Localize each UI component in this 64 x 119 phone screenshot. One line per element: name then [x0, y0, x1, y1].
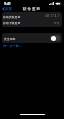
staticText: 打开 — [54, 21, 60, 24]
staticText: 自动下载更新 — [3, 21, 21, 24]
staticText: 9:41 — [4, 1, 11, 6]
button[interactable]: 自动下载更新 — [3, 19, 60, 25]
staticText: 安全回应 — [4, 37, 16, 40]
button[interactable]: 安全回应 — [2, 33, 62, 43]
button[interactable]: 自动安装更新 — [3, 13, 60, 19]
button[interactable]: Toggle — [50, 35, 60, 41]
staticText: 软件更新 — [23, 7, 41, 12]
staticText: 进一步了解… — [3, 44, 22, 48]
button[interactable]: 进一步了解… — [3, 44, 22, 48]
button[interactable]: Back to Settings — [1, 6, 13, 12]
staticText: 设置 — [5, 7, 12, 11]
staticText: 自动安装更新 — [3, 15, 21, 18]
staticText: iOS 17.4.1 — [45, 14, 60, 18]
